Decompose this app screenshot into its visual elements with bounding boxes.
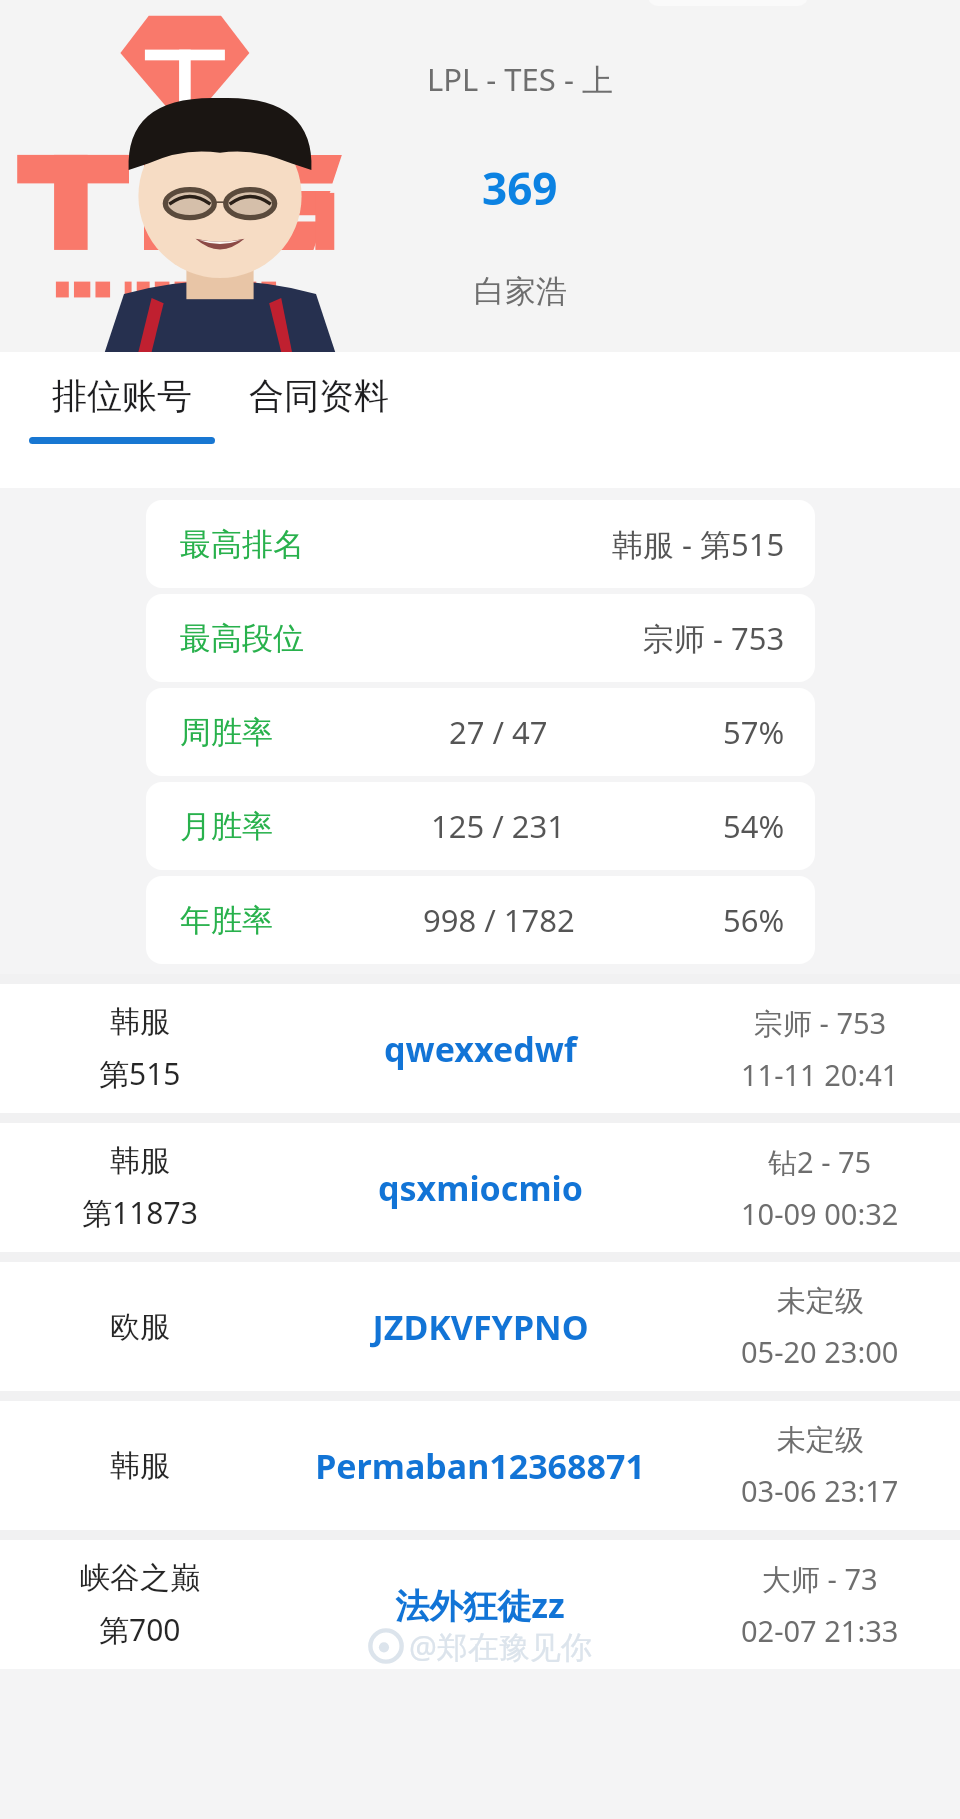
staticText: Permaban12368871 bbox=[315, 1443, 645, 1489]
staticText: 韩服 - 第515 bbox=[612, 523, 785, 565]
staticText: 大师 - 73 bbox=[762, 1559, 878, 1599]
button[interactable]: 排位账号 bbox=[29, 352, 215, 472]
staticText: 韩服 bbox=[110, 1003, 170, 1041]
staticText: @郑在豫见你 bbox=[409, 1625, 592, 1667]
button[interactable]: 年胜率 bbox=[146, 876, 815, 964]
button[interactable]: 最高排名 bbox=[146, 500, 815, 588]
staticText: 第515 bbox=[99, 1053, 181, 1094]
staticText: 05-20 23:00 bbox=[741, 1332, 899, 1371]
staticText: 第11873 bbox=[82, 1192, 198, 1233]
staticText: 125 / 231 bbox=[431, 805, 566, 847]
staticText: 宗师 - 753 bbox=[643, 617, 785, 659]
staticText: 周胜率 bbox=[180, 713, 273, 752]
staticText: JZDKVFYPNO bbox=[372, 1304, 589, 1350]
staticText: 未定级 bbox=[777, 1283, 864, 1320]
button[interactable]: 周胜率 bbox=[146, 688, 815, 776]
staticText: 10-09 00:32 bbox=[741, 1194, 899, 1233]
staticText: qwexxedwf bbox=[384, 1026, 577, 1072]
staticText: 排位账号 bbox=[52, 374, 192, 418]
staticText: 第700 bbox=[99, 1609, 181, 1650]
button[interactable]: 合同资料 bbox=[229, 352, 409, 472]
staticText: 欧服 bbox=[110, 1308, 170, 1346]
staticText: 57% bbox=[723, 711, 785, 753]
staticText: 最高排名 bbox=[180, 525, 304, 564]
staticText: 韩服 bbox=[110, 1447, 170, 1485]
staticText: LPL - TES - 上 bbox=[427, 58, 613, 100]
staticText: 峡谷之巅 bbox=[80, 1559, 200, 1597]
staticText: 02-07 21:33 bbox=[741, 1611, 899, 1650]
button[interactable]: 韩服 bbox=[0, 984, 960, 1113]
staticText: 最高段位 bbox=[180, 619, 304, 658]
staticText: 56% bbox=[723, 899, 785, 941]
button[interactable]: 韩服 bbox=[0, 1401, 960, 1530]
staticText: 宗师 - 753 bbox=[754, 1003, 887, 1043]
staticText: 年胜率 bbox=[180, 901, 273, 940]
staticText: qsxmiocmio bbox=[378, 1165, 583, 1211]
button[interactable]: 韩服 bbox=[0, 1123, 960, 1252]
staticText: 月胜率 bbox=[180, 807, 273, 846]
staticText: 11-11 20:41 bbox=[741, 1055, 899, 1094]
staticText: 27 / 47 bbox=[449, 711, 548, 753]
staticText: 合同资料 bbox=[249, 374, 389, 418]
staticText: 369 bbox=[482, 158, 558, 218]
staticText: 法外狂徒zz bbox=[395, 1582, 565, 1628]
staticText: 未定级 bbox=[777, 1422, 864, 1459]
button[interactable]: 月胜率 bbox=[146, 782, 815, 870]
staticText: 998 / 1782 bbox=[423, 899, 575, 941]
staticText: 韩服 bbox=[110, 1142, 170, 1180]
staticText: 白家浩 bbox=[474, 272, 567, 311]
staticText: 钻2 - 75 bbox=[768, 1142, 872, 1182]
button[interactable]: 欧服 bbox=[0, 1262, 960, 1391]
staticText: 03-06 23:17 bbox=[741, 1471, 899, 1510]
staticText: 54% bbox=[723, 805, 785, 847]
button[interactable]: 峡谷之巅 bbox=[0, 1540, 960, 1669]
button[interactable]: 最高段位 bbox=[146, 594, 815, 682]
